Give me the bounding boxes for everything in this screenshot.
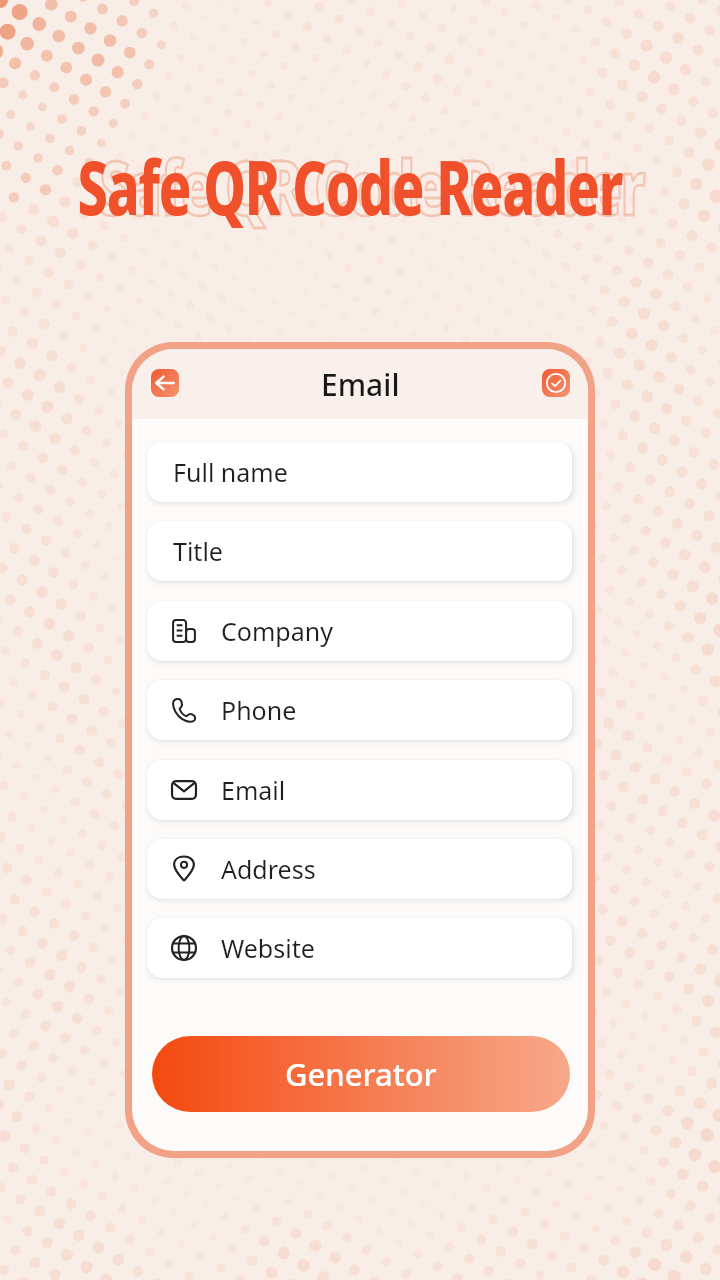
- staticText: Title: [173, 534, 223, 568]
- staticText: Email: [321, 364, 400, 405]
- button[interactable]: Title: [147, 521, 572, 581]
- staticText: Company: [221, 614, 333, 648]
- staticText: Full name: [173, 455, 288, 489]
- button[interactable]: Phone: [147, 680, 572, 740]
- staticText: Address: [221, 852, 316, 886]
- button[interactable]: Address: [147, 839, 572, 899]
- button[interactable]: Company: [147, 601, 572, 661]
- button[interactable]: Email: [147, 760, 572, 820]
- button[interactable]: Website: [147, 918, 572, 978]
- button[interactable]: Generator: [152, 1036, 570, 1112]
- staticText: Safe QR Code Reader: [78, 135, 622, 236]
- staticText: Email: [221, 773, 286, 807]
- button[interactable]: Full name: [147, 442, 572, 502]
- button[interactable]: [151, 369, 179, 397]
- staticText: Safe QR Code Reader: [100, 135, 644, 236]
- staticText: Phone: [221, 693, 297, 727]
- button[interactable]: [542, 369, 570, 397]
- staticText: Website: [221, 931, 315, 965]
- staticText: Generator: [285, 1053, 437, 1095]
